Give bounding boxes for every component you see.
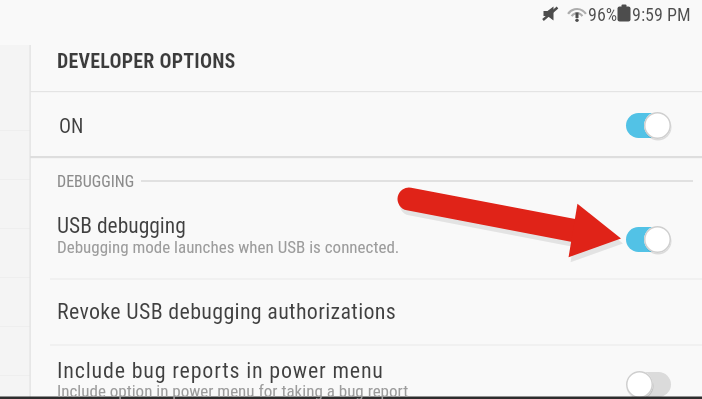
staticText: DEBUGGING (57, 172, 135, 191)
staticText: Include option in power menu for taking … (57, 381, 409, 399)
button[interactable]: ON (30, 93, 702, 156)
staticText: Revoke USB debugging authorizations (57, 299, 397, 325)
staticText: 96% (588, 4, 618, 25)
staticText: Include bug reports in power menu (57, 358, 384, 384)
staticText: ON (59, 114, 84, 137)
staticText: 9:59 PM (632, 4, 691, 25)
staticText: Debugging mode launches when USB is conn… (57, 237, 400, 257)
button[interactable]: USB debugging (30, 196, 702, 278)
staticText: DEVELOPER OPTIONS (57, 49, 236, 72)
button[interactable]: Revoke USB debugging authorizations (30, 279, 702, 345)
staticText: USB debugging (57, 213, 186, 238)
button[interactable]: Include bug reports in power menu (30, 345, 702, 399)
